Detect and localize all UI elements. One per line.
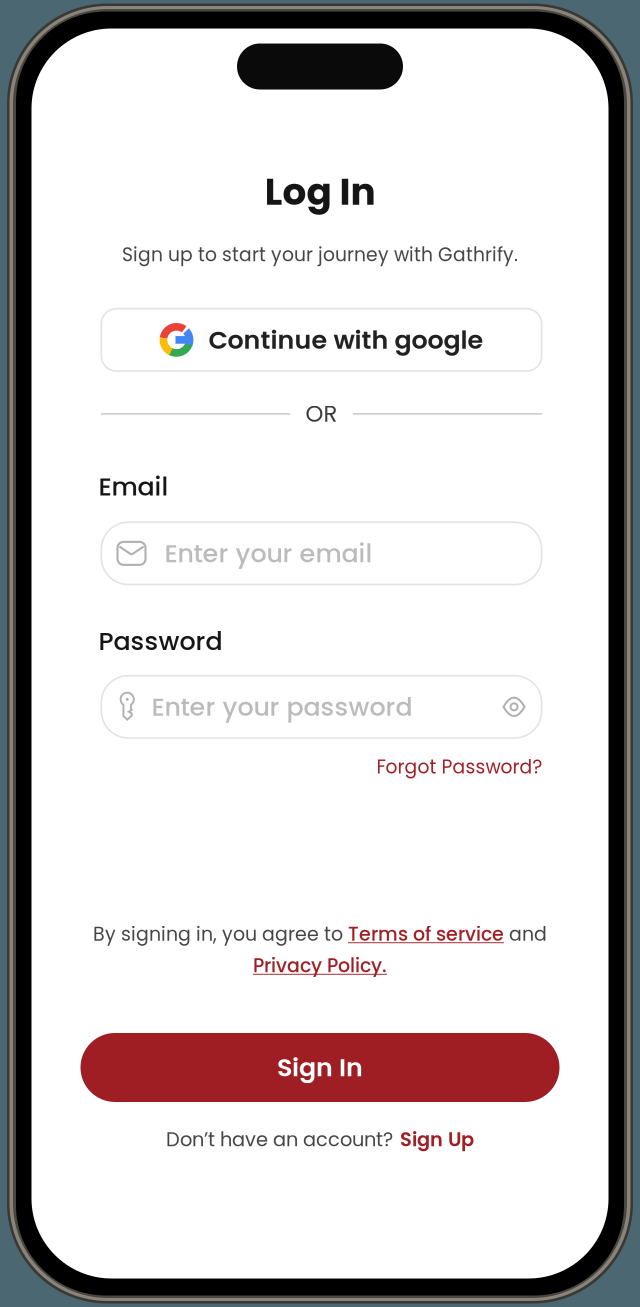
staticText: Forgot Password? [376,754,542,780]
button[interactable]: Sign In [80,1033,559,1102]
button[interactable]: Forgot Password? [100,754,542,780]
staticText: Enter your password [151,689,412,725]
staticText: By signing in, you agree to [93,921,348,947]
staticText: Enter your email [164,536,372,571]
button[interactable]: Don’t have an account? [31,1126,608,1153]
button[interactable]: Show password [502,698,542,716]
staticText: Sign In [277,1050,363,1085]
staticText: Password [98,623,222,659]
staticText: Email [98,469,168,504]
button[interactable]: Terms of service [348,921,504,947]
button[interactable]: Privacy Policy. [31,952,608,979]
staticText: Don’t have an account? [166,1126,393,1153]
staticText: Continue with google [208,322,483,358]
button[interactable]: Continue with google [100,308,542,372]
staticText: Log In [264,165,375,218]
staticText: Sign Up [400,1126,474,1153]
staticText: Sign up to start your journey with Gathr… [122,242,518,268]
staticText: Terms of service [348,921,504,947]
staticText: Privacy Policy. [253,952,387,979]
staticText: and [504,921,547,947]
staticText: OR [305,398,337,430]
